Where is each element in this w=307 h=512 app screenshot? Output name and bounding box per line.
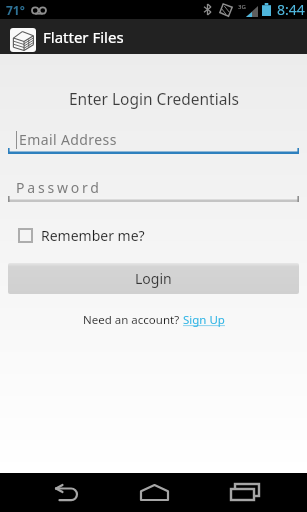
button[interactable] [27, 473, 101, 512]
staticText: Password [16, 178, 102, 197]
button[interactable]: Email Address [0, 126, 307, 154]
button[interactable] [207, 473, 281, 512]
staticText: Enter Login Credentials [69, 88, 239, 109]
button[interactable]: Password [0, 174, 307, 202]
button[interactable]: Sign Up [183, 312, 225, 328]
staticText: Login [135, 269, 172, 288]
staticText: 3G [238, 3, 246, 11]
staticText: Need an account? [83, 312, 183, 328]
staticText: 71° [6, 2, 25, 18]
button[interactable]: Remember me? [18, 226, 145, 245]
staticText: Email Address [19, 130, 117, 149]
staticText: 8:44 [277, 0, 305, 19]
staticText: Flatter Files [43, 27, 124, 47]
button[interactable] [117, 473, 191, 512]
staticText: Remember me? [41, 226, 145, 245]
button[interactable]: Login [8, 263, 299, 294]
